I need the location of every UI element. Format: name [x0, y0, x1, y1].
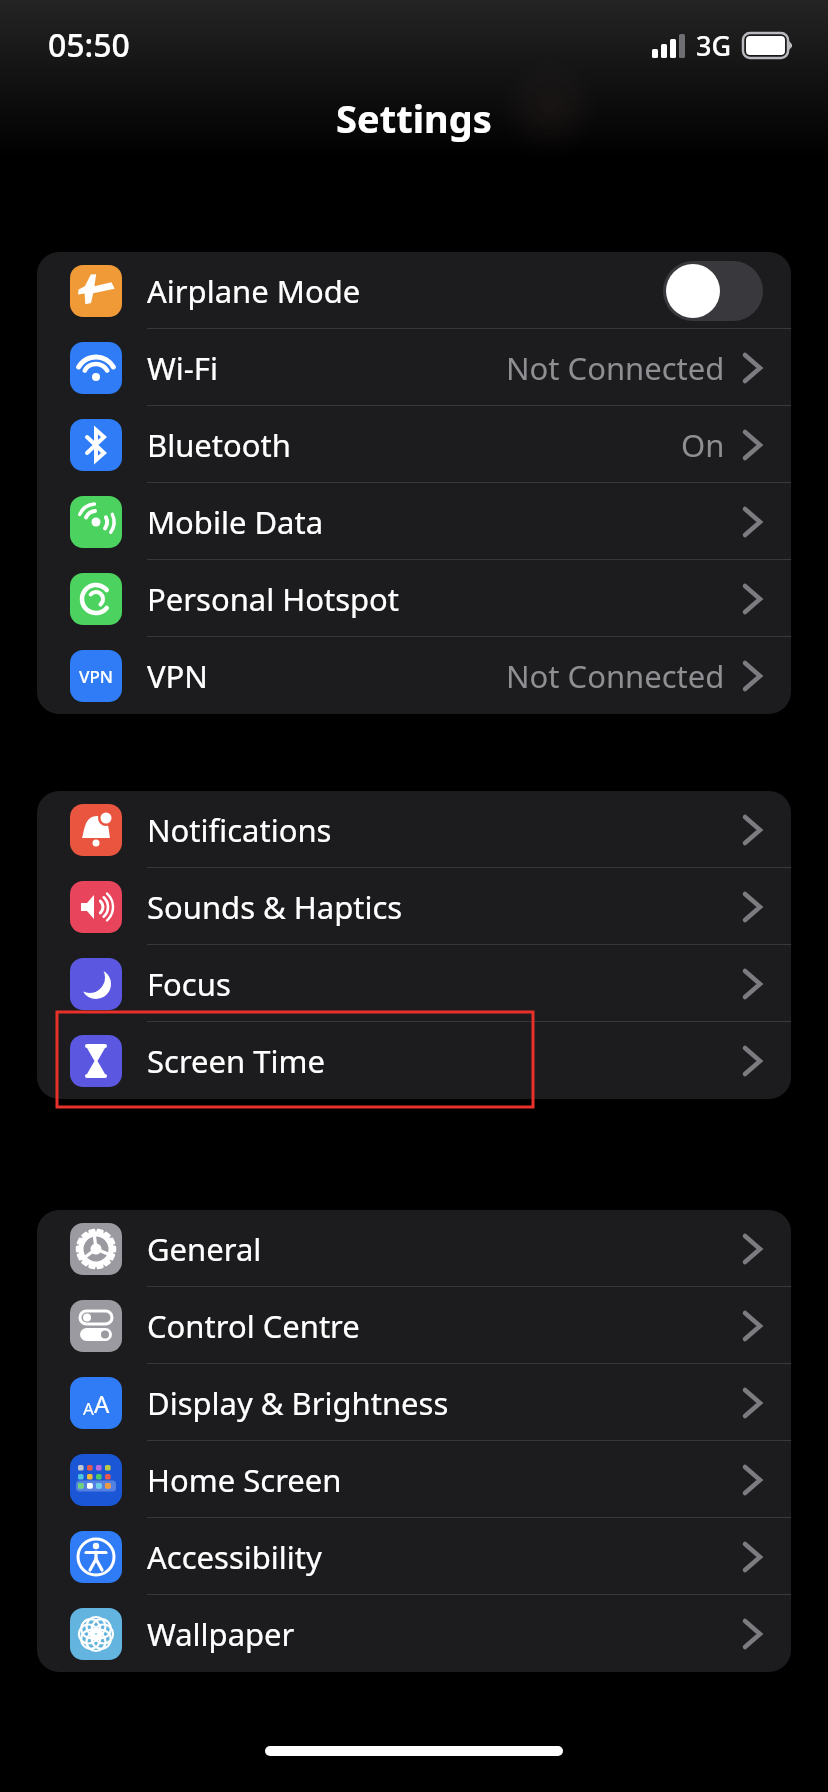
- staticText: Mobile Data: [147, 501, 324, 543]
- staticText: On: [681, 424, 725, 466]
- button[interactable]: Wallpaper: [37, 1595, 791, 1672]
- staticText: Not Connected: [506, 655, 725, 697]
- staticText: Focus: [147, 963, 231, 1005]
- staticText: Wi-Fi: [147, 347, 218, 389]
- button[interactable]: Bluetooth: [37, 406, 791, 483]
- button[interactable]: Wi-Fi: [37, 329, 791, 406]
- button[interactable]: Notifications: [37, 791, 791, 868]
- button[interactable]: A: [37, 1364, 791, 1441]
- staticText: Display & Brightness: [147, 1382, 449, 1424]
- staticText: Personal Hotspot: [147, 578, 400, 620]
- staticText: Notifications: [147, 809, 332, 851]
- button[interactable]: Accessibility: [37, 1518, 791, 1595]
- staticText: Not Connected: [506, 347, 725, 389]
- button[interactable]: Airplane Mode: [37, 252, 791, 329]
- button[interactable]: Personal Hotspot: [37, 560, 791, 637]
- button[interactable]: Screen Time: [37, 1022, 791, 1099]
- staticText: Accessibility: [147, 1536, 322, 1578]
- button[interactable]: Focus: [37, 945, 791, 1022]
- staticText: Settings: [336, 92, 492, 144]
- staticText: VPN: [147, 655, 208, 697]
- staticText: Airplane Mode: [147, 270, 361, 312]
- staticText: Wallpaper: [147, 1613, 295, 1655]
- staticText: Sounds & Haptics: [147, 886, 403, 928]
- staticText: A: [83, 1397, 94, 1420]
- button[interactable]: Home Screen: [37, 1441, 791, 1518]
- button[interactable]: General: [37, 1210, 791, 1287]
- staticText: 05:50: [48, 23, 130, 67]
- staticText: General: [147, 1228, 262, 1270]
- staticText: Home Screen: [147, 1459, 342, 1501]
- staticText: Bluetooth: [147, 424, 291, 466]
- button[interactable]: Airplane Mode toggle: [663, 261, 763, 321]
- staticText: Screen Time: [147, 1040, 325, 1082]
- staticText: VPN: [79, 665, 114, 688]
- staticText: Control Centre: [147, 1305, 360, 1347]
- button[interactable]: Sounds & Haptics: [37, 868, 791, 945]
- staticText: 3G: [696, 27, 732, 64]
- staticText: A: [94, 1387, 110, 1420]
- button[interactable]: Mobile Data: [37, 483, 791, 560]
- button[interactable]: Control Centre: [37, 1287, 791, 1364]
- button[interactable]: VPN: [37, 637, 791, 714]
